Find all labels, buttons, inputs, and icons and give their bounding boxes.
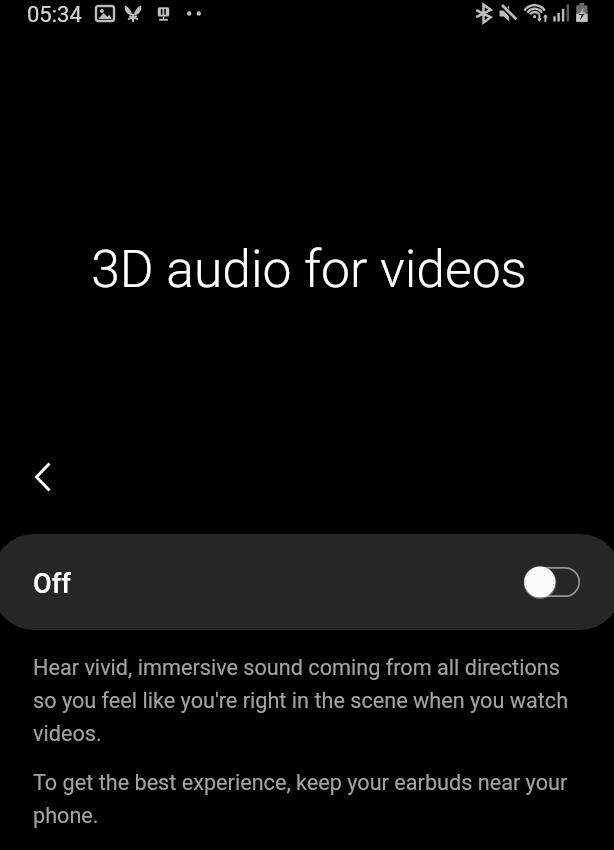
button[interactable]: Navigate up (8, 443, 76, 511)
staticText: 05:34 (27, 2, 82, 28)
staticText: 3D audio for videos (2, 239, 614, 299)
staticText: Off (33, 568, 71, 600)
button[interactable]: Off (0, 534, 614, 630)
staticText: To get the best experience, keep your ea… (33, 770, 574, 828)
button[interactable]: 3D audio for videos, off (524, 564, 580, 600)
staticText: Hear vivid, immersive sound coming from … (33, 655, 574, 746)
